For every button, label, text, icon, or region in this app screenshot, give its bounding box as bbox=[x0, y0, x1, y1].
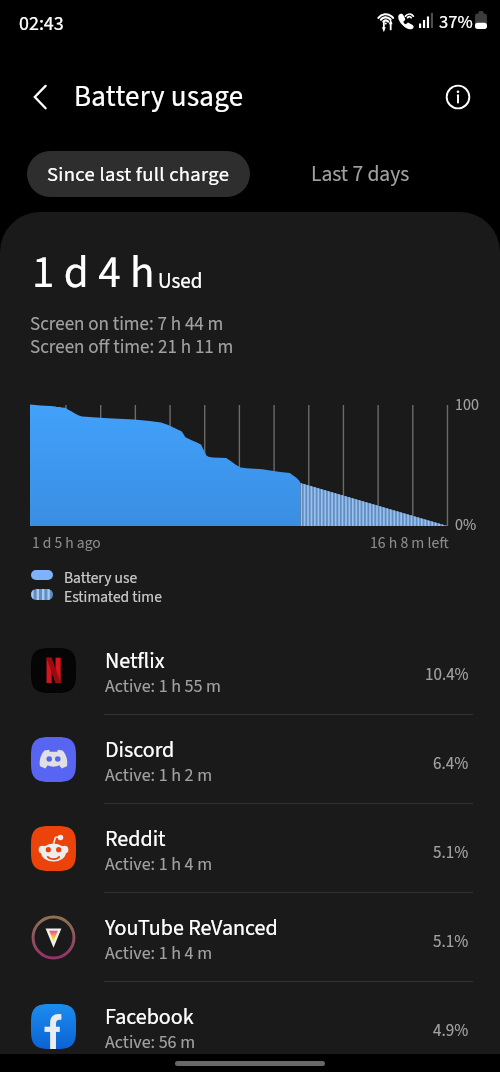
staticText: 10.4% bbox=[425, 663, 469, 687]
button[interactable]: Facebook bbox=[0, 982, 500, 1071]
staticText: 4.9% bbox=[433, 1019, 469, 1043]
staticText: Battery use bbox=[64, 567, 138, 589]
staticText: Active: 1 h 55 m bbox=[105, 674, 222, 700]
staticText: Active: 1 h 4 m bbox=[105, 852, 213, 878]
staticText: Estimated time bbox=[64, 586, 162, 608]
button[interactable]: Since last full charge bbox=[27, 151, 250, 197]
button[interactable]: Information bbox=[444, 83, 472, 111]
button[interactable]: Netflix bbox=[0, 626, 500, 715]
staticText: 0% bbox=[455, 514, 477, 537]
button[interactable]: Navigate up bbox=[25, 79, 61, 115]
staticText: 02:43 bbox=[19, 10, 64, 38]
button[interactable]: Last 7 days bbox=[300, 151, 420, 197]
staticText: Active: 1 h 2 m bbox=[105, 763, 213, 789]
staticText: YouTube ReVanced bbox=[105, 912, 278, 943]
button[interactable]: Reddit bbox=[0, 804, 500, 893]
staticText: 100 bbox=[455, 394, 479, 417]
button[interactable]: YouTube ReVanced bbox=[0, 893, 500, 982]
staticText: 5.1% bbox=[433, 930, 469, 954]
staticText: Facebook bbox=[105, 1001, 194, 1032]
staticText: Netflix bbox=[105, 645, 165, 676]
staticText: 1 d 4 h bbox=[32, 241, 155, 305]
staticText: Active: 1 h 4 m bbox=[105, 941, 213, 967]
staticText: Active: 56 m bbox=[105, 1030, 196, 1056]
staticText: Screen on time: 7 h 44 m bbox=[30, 311, 224, 338]
staticText: 16 h 8 m left bbox=[370, 532, 449, 554]
staticText: 1 d 5 h ago bbox=[32, 532, 101, 554]
staticText: Used bbox=[158, 266, 203, 296]
button[interactable]: Discord bbox=[0, 715, 500, 804]
staticText: 37% bbox=[439, 9, 473, 35]
staticText: Since last full charge bbox=[47, 160, 230, 189]
staticText: Reddit bbox=[105, 823, 166, 854]
staticText: Discord bbox=[105, 734, 175, 765]
staticText: Screen off time: 21 h 11 m bbox=[30, 334, 234, 361]
staticText: Battery usage bbox=[74, 76, 244, 117]
staticText: Last 7 days bbox=[311, 159, 410, 190]
staticText: 5.1% bbox=[433, 841, 469, 865]
staticText: 6.4% bbox=[433, 752, 469, 776]
